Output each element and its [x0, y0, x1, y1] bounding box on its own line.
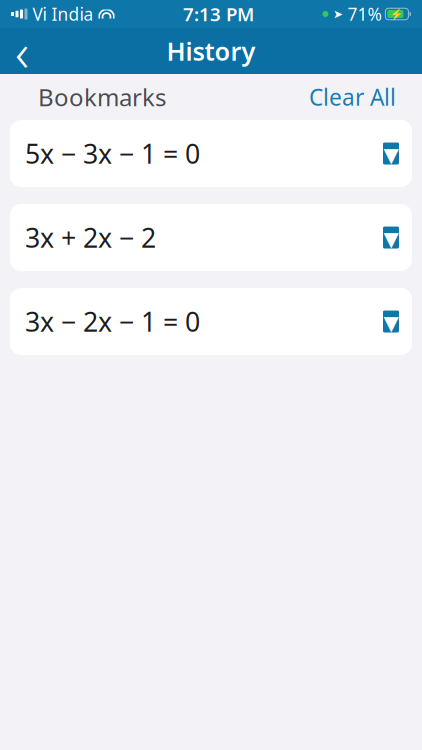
button[interactable]: Clear All	[309, 82, 396, 112]
staticText: ⚡	[390, 8, 403, 20]
button[interactable]: 3x − 2x − 1 = 0	[10, 288, 412, 355]
staticText: History	[166, 34, 255, 68]
staticText: ➤	[333, 7, 343, 21]
staticText: ‹	[15, 16, 29, 86]
staticText: ▼	[383, 144, 398, 166]
staticText: 3x − 2x − 1 = 0	[25, 304, 200, 339]
staticText: Clear All	[309, 82, 396, 112]
staticText: 5x − 3x − 1 = 0	[25, 136, 200, 171]
staticText: 3x + 2x − 2	[25, 220, 156, 255]
button[interactable]: 3x + 2x − 2	[10, 204, 412, 271]
button[interactable]: 5x − 3x − 1 = 0	[10, 120, 412, 187]
staticText: Bookmarks	[38, 81, 166, 113]
staticText: ▼	[383, 228, 398, 250]
staticText: ▼	[383, 312, 398, 334]
staticText: 7:13 PM	[183, 2, 254, 26]
staticText: Vi India	[32, 2, 93, 25]
staticText: 71%	[347, 2, 381, 25]
button[interactable]: Back	[0, 28, 44, 74]
